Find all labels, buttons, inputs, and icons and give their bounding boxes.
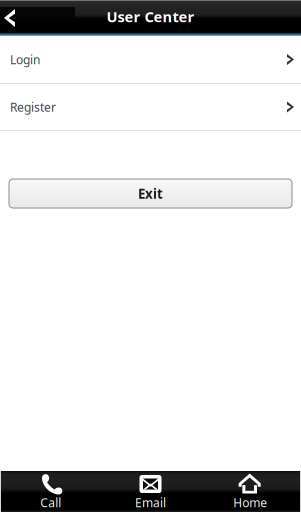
staticText: Exit: [138, 185, 163, 202]
staticText: Register: [10, 99, 56, 115]
button[interactable]: Register: [0, 84, 301, 130]
staticText: Call: [40, 494, 61, 510]
staticText: Home: [233, 494, 267, 510]
staticText: Login: [10, 51, 40, 67]
staticText: User Center: [106, 7, 194, 26]
button[interactable]: Exit: [9, 179, 292, 208]
staticText: Email: [135, 494, 166, 510]
button[interactable]: Back: [0, 0, 76, 33]
button[interactable]: Home: [200, 471, 300, 512]
button[interactable]: Login: [0, 36, 301, 83]
button[interactable]: Call: [1, 471, 101, 512]
button[interactable]: Email: [101, 471, 200, 512]
